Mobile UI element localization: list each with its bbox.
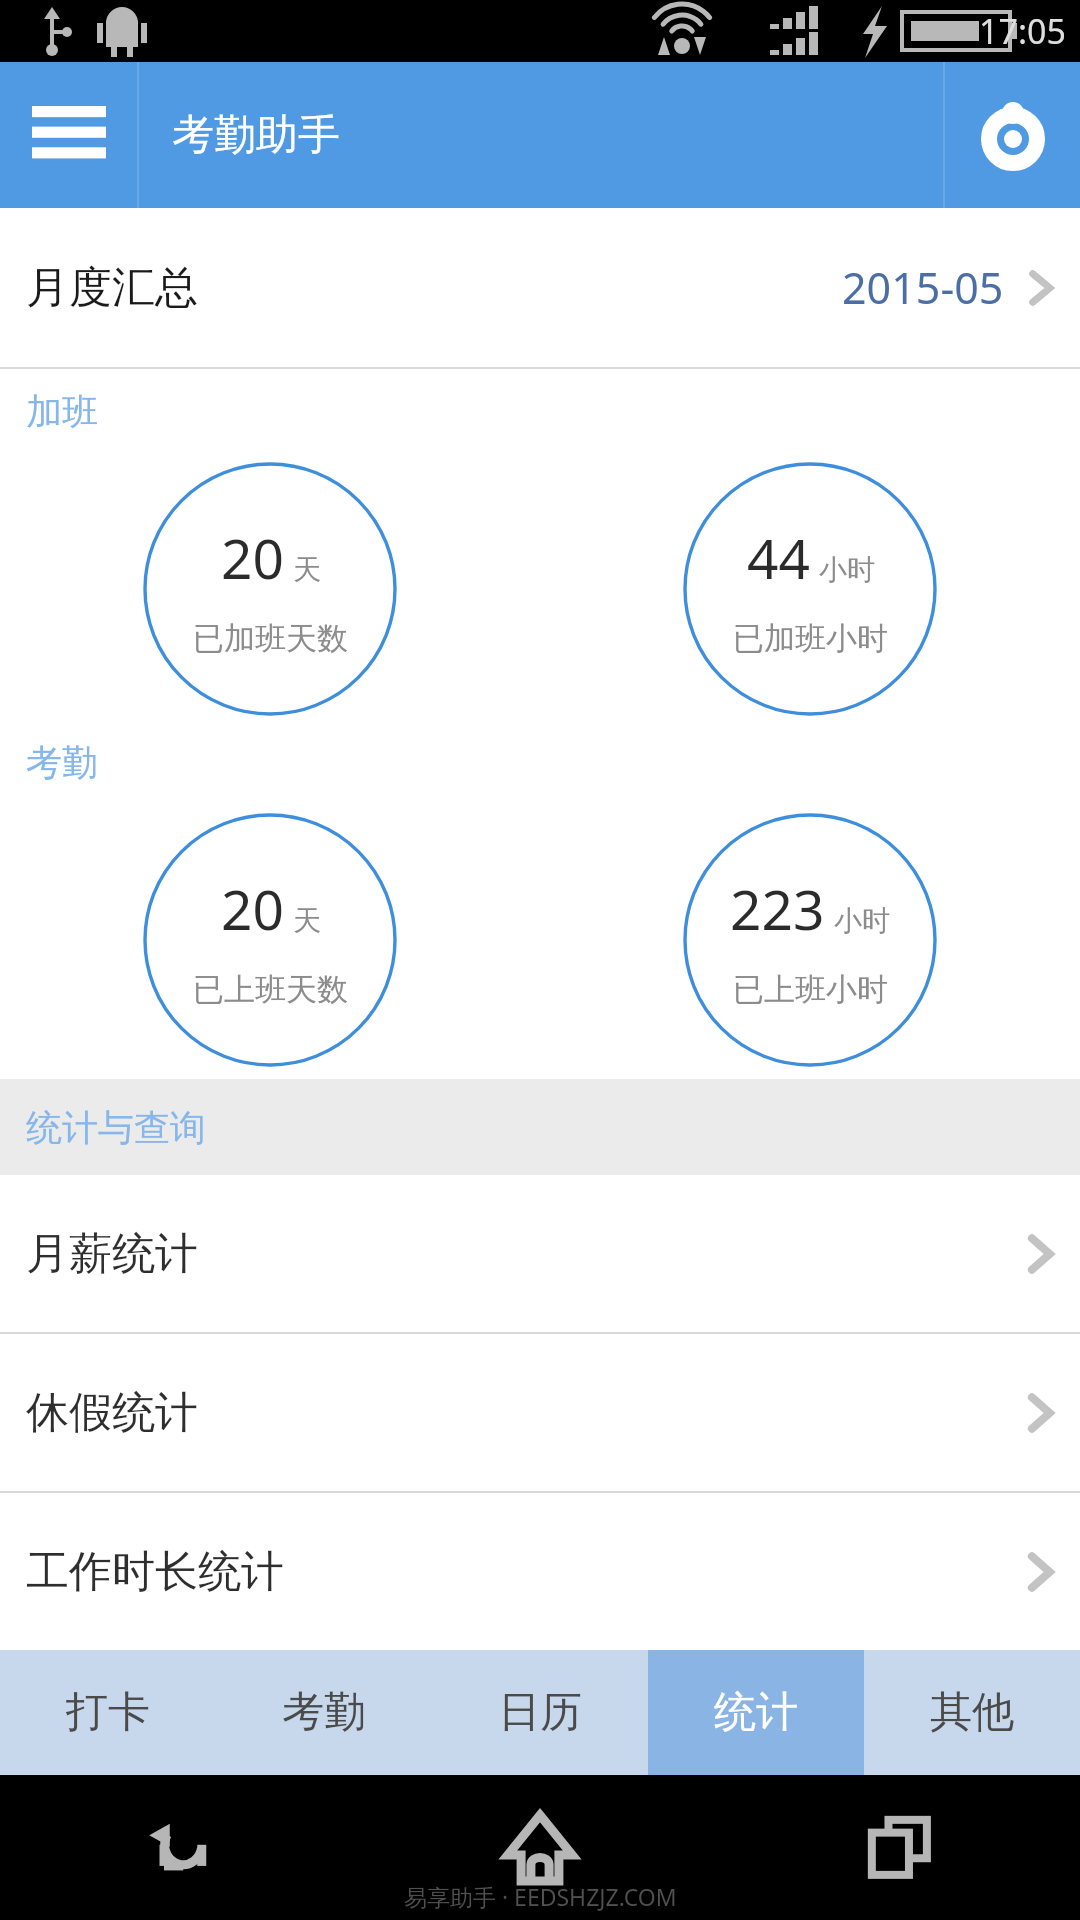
staticText: 2015-05: [842, 258, 1004, 317]
staticText: 其他: [930, 1686, 1014, 1739]
staticText: 已上班天数: [193, 970, 348, 1009]
button[interactable]: 月薪统计: [0, 1175, 1080, 1332]
staticText: 小时: [819, 552, 875, 587]
button[interactable]: 223: [683, 813, 937, 1067]
staticText: 工作时长统计: [26, 1545, 284, 1599]
button[interactable]: 休假统计: [0, 1334, 1080, 1491]
staticText: 17:05: [979, 8, 1066, 54]
button[interactable]: Back: [0, 1775, 360, 1920]
button[interactable]: Timer: [945, 62, 1080, 208]
staticText: 休假统计: [26, 1386, 198, 1440]
button[interactable]: 打卡: [0, 1650, 216, 1775]
staticText: 统计与查询: [26, 1105, 206, 1150]
button[interactable]: 44: [683, 462, 937, 716]
button[interactable]: 考勤: [216, 1650, 432, 1775]
staticText: 已上班小时: [733, 970, 888, 1009]
staticText: 月薪统计: [26, 1227, 198, 1281]
button[interactable]: 工作时长统计: [0, 1493, 1080, 1650]
staticText: 日历: [498, 1686, 582, 1739]
staticText: 易享助手 · EEDSHZJZ.COM: [404, 1881, 677, 1912]
staticText: 加班: [26, 389, 98, 434]
button[interactable]: 月度汇总: [0, 208, 1080, 367]
staticText: 44: [747, 520, 810, 595]
staticText: 月度汇总: [26, 261, 198, 315]
staticText: 统计: [714, 1686, 798, 1739]
staticText: 打卡: [66, 1686, 150, 1739]
button[interactable]: 统计: [648, 1650, 864, 1775]
staticText: 考勤: [26, 740, 98, 785]
staticText: 考勤助手: [172, 109, 340, 162]
staticText: 已加班天数: [193, 619, 348, 658]
staticText: 223: [730, 871, 825, 946]
staticText: 20: [221, 871, 284, 946]
staticText: 考勤: [282, 1686, 366, 1739]
button[interactable]: 20: [143, 462, 397, 716]
staticText: 已加班小时: [733, 619, 888, 658]
staticText: 天: [293, 903, 321, 938]
staticText: 小时: [834, 903, 890, 938]
button[interactable]: 20: [143, 813, 397, 1067]
staticText: 天: [293, 552, 321, 587]
button[interactable]: Home: [360, 1775, 720, 1920]
button[interactable]: Recents: [720, 1775, 1080, 1920]
button[interactable]: 其他: [864, 1650, 1080, 1775]
button[interactable]: Menu: [0, 62, 137, 208]
staticText: 20: [221, 520, 284, 595]
button[interactable]: 日历: [432, 1650, 648, 1775]
